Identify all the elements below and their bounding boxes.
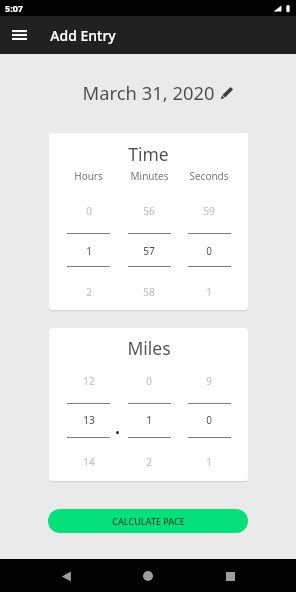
button[interactable]: 56 bbox=[119, 204, 179, 218]
button[interactable]: Home bbox=[132, 560, 164, 592]
button[interactable]: Minutes bbox=[119, 169, 179, 183]
button[interactable]: 13 bbox=[58, 413, 119, 427]
button[interactable]: Open navigation menu bbox=[0, 16, 38, 54]
button[interactable]: CALCULATE PACE bbox=[48, 509, 248, 533]
staticText: Minutes bbox=[130, 169, 169, 183]
staticText: Miles bbox=[127, 336, 171, 360]
staticText: 2 bbox=[146, 455, 152, 469]
staticText: 0 bbox=[206, 244, 212, 258]
staticText: 0 bbox=[146, 374, 152, 388]
button[interactable]: 2 bbox=[119, 455, 179, 469]
staticText: 1 bbox=[86, 244, 92, 258]
staticText: Time bbox=[128, 142, 169, 166]
staticText: CALCULATE PACE bbox=[112, 515, 185, 527]
staticText: 2 bbox=[86, 285, 92, 299]
staticText: 1 bbox=[146, 413, 152, 427]
button[interactable]: Hours bbox=[58, 169, 119, 183]
button[interactable]: 12 bbox=[58, 374, 119, 388]
button[interactable]: 0 bbox=[179, 244, 239, 258]
button[interactable]: 0 bbox=[119, 374, 179, 388]
button[interactable]: 1 bbox=[58, 244, 119, 258]
staticText: 0 bbox=[206, 413, 212, 427]
button[interactable]: 59 bbox=[179, 204, 239, 218]
button[interactable]: 0 bbox=[58, 204, 119, 218]
staticText: 5:07 bbox=[5, 2, 23, 14]
button[interactable]: 58 bbox=[119, 285, 179, 299]
other: Edit date bbox=[220, 86, 234, 100]
button[interactable]: 9 bbox=[179, 374, 239, 388]
staticText: March 31, 2020 bbox=[82, 80, 215, 105]
button[interactable]: Back bbox=[50, 560, 82, 592]
staticText: 59 bbox=[203, 204, 215, 218]
staticText: 13 bbox=[83, 413, 95, 427]
button[interactable]: 1 bbox=[119, 413, 179, 427]
button[interactable]: Recent apps bbox=[214, 560, 246, 592]
staticText: 56 bbox=[143, 204, 155, 218]
staticText: 1 bbox=[206, 455, 212, 469]
button[interactable]: 1 bbox=[179, 285, 239, 299]
button[interactable]: 0 bbox=[179, 413, 239, 427]
button[interactable]: 1 bbox=[179, 455, 239, 469]
staticText: Hours bbox=[74, 169, 103, 183]
button[interactable]: 57 bbox=[119, 244, 179, 258]
staticText: 0 bbox=[86, 204, 92, 218]
staticText: 57 bbox=[143, 244, 155, 258]
staticText: 9 bbox=[206, 374, 212, 388]
staticText: 1 bbox=[206, 285, 212, 299]
button[interactable]: 2 bbox=[58, 285, 119, 299]
staticText: Add Entry bbox=[50, 26, 116, 45]
button[interactable]: March 31, 2020 bbox=[82, 80, 234, 105]
staticText: Seconds bbox=[189, 169, 229, 183]
staticText: 14 bbox=[83, 455, 95, 469]
button[interactable]: Seconds bbox=[179, 169, 239, 183]
button[interactable]: 14 bbox=[58, 455, 119, 469]
staticText: 12 bbox=[83, 374, 95, 388]
staticText: 58 bbox=[143, 285, 155, 299]
